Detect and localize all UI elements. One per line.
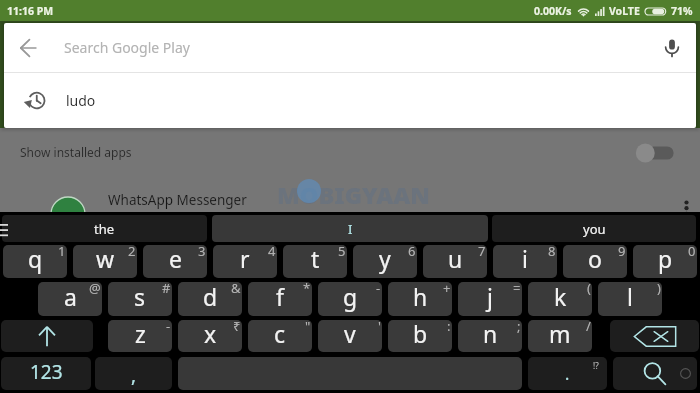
- staticText: w: [96, 245, 115, 274]
- staticText: v: [344, 320, 356, 349]
- staticText: WhatsApp Messenger: [108, 191, 247, 209]
- staticText: 11:16 PM: [7, 4, 54, 18]
- button[interactable]: ,: [95, 357, 172, 390]
- button[interactable]: 123: [1, 357, 91, 390]
- staticText: -: [376, 282, 381, 297]
- staticText: *: [303, 282, 311, 297]
- staticText: k: [554, 282, 567, 312]
- staticText: 3: [198, 245, 206, 260]
- staticText: ₹: [233, 320, 241, 335]
- staticText: !?: [593, 360, 599, 371]
- button[interactable]: k: [528, 282, 592, 316]
- staticText: you: [583, 220, 606, 238]
- button[interactable]: p: [633, 245, 697, 278]
- button[interactable]: b: [388, 320, 452, 352]
- button[interactable]: d: [178, 282, 242, 316]
- button[interactable]: q: [3, 245, 67, 278]
- staticText: o: [588, 245, 602, 274]
- button[interactable]: o: [563, 245, 627, 278]
- staticText: l: [627, 282, 633, 312]
- staticText: ): [657, 282, 661, 297]
- button[interactable]: h: [388, 282, 452, 316]
- button[interactable]: you: [492, 215, 696, 242]
- staticText: e: [169, 245, 182, 274]
- staticText: the: [94, 220, 115, 238]
- staticText: =: [513, 282, 521, 297]
- button[interactable]: r: [213, 245, 277, 278]
- button[interactable]: f: [248, 282, 312, 316]
- button[interactable]: y: [353, 245, 417, 278]
- staticText: 71%: [671, 4, 693, 18]
- staticText: I: [348, 220, 353, 238]
- staticText: Search Google Play: [64, 38, 190, 57]
- button[interactable]: .: [528, 357, 607, 390]
- staticText: 8: [548, 245, 556, 260]
- staticText: Show installed apps: [20, 144, 132, 160]
- staticText: ": [305, 320, 311, 335]
- button[interactable]: Back: [4, 23, 53, 72]
- button[interactable]: Backspace: [610, 320, 699, 352]
- staticText: p: [658, 245, 673, 274]
- button[interactable]: x: [178, 320, 242, 352]
- button[interactable]: c: [248, 320, 312, 352]
- button[interactable]: u: [423, 245, 487, 278]
- staticText: VoLTE: [609, 4, 640, 18]
- staticText: x: [204, 320, 217, 349]
- staticText: j: [487, 282, 493, 312]
- staticText: g: [343, 282, 358, 312]
- staticText: +: [443, 282, 451, 297]
- staticText: MOBIGYAAN: [277, 179, 430, 211]
- staticText: 9: [618, 245, 626, 260]
- staticText: q: [28, 245, 43, 274]
- button[interactable]: z: [108, 320, 172, 352]
- button[interactable]: Shift: [1, 320, 93, 352]
- button[interactable]: v: [318, 320, 382, 352]
- staticText: r: [240, 245, 250, 274]
- staticText: c: [274, 320, 286, 349]
- staticText: a: [64, 282, 77, 312]
- staticText: 0.00K/s: [534, 4, 572, 18]
- button[interactable]: n: [458, 320, 522, 352]
- staticText: t: [311, 245, 320, 274]
- staticText: ;: [517, 320, 521, 335]
- staticText: @: [89, 282, 101, 297]
- staticText: &: [231, 282, 241, 297]
- button[interactable]: j: [458, 282, 522, 316]
- button[interactable]: l: [598, 282, 662, 316]
- staticText: z: [135, 320, 146, 349]
- button[interactable]: I: [212, 215, 488, 242]
- staticText: 7: [478, 245, 486, 260]
- staticText: 0: [688, 245, 696, 260]
- button[interactable]: i: [493, 245, 557, 278]
- button[interactable]: w: [73, 245, 137, 278]
- staticText: d: [203, 282, 218, 312]
- staticText: ludo: [66, 91, 96, 110]
- button[interactable]: m: [528, 320, 592, 352]
- staticText: i: [522, 245, 528, 274]
- button[interactable]: s: [108, 282, 172, 316]
- staticText: 1: [58, 245, 66, 260]
- staticText: 123: [30, 359, 63, 385]
- staticText: u: [448, 245, 463, 274]
- staticText: .: [565, 363, 570, 385]
- button[interactable]: g: [318, 282, 382, 316]
- button[interactable]: the: [2, 215, 207, 242]
- button[interactable]: Search: [613, 357, 697, 390]
- staticText: s: [134, 282, 146, 312]
- staticText: 2: [128, 245, 136, 260]
- button[interactable]: e: [143, 245, 207, 278]
- staticText: b: [413, 320, 428, 349]
- button[interactable]: Voice search: [647, 23, 696, 72]
- staticText: -: [166, 320, 171, 335]
- button[interactable]: t: [283, 245, 347, 278]
- button[interactable]: ludo: [4, 73, 696, 128]
- staticText: ': [378, 320, 381, 335]
- staticText: f: [276, 282, 284, 312]
- staticText: y: [379, 245, 391, 274]
- staticText: ,: [131, 362, 137, 388]
- staticText: :: [447, 320, 451, 335]
- staticText: #: [162, 282, 171, 297]
- staticText: 6: [408, 245, 416, 260]
- button[interactable]: a: [38, 282, 102, 316]
